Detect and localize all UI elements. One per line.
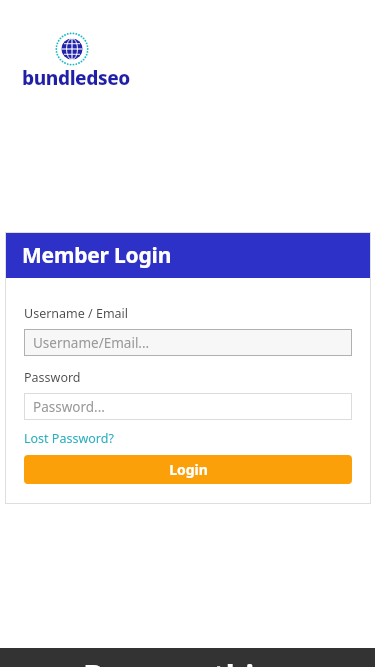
button[interactable]: Lost Password? — [24, 430, 114, 447]
staticText: Lost Password? — [24, 430, 114, 447]
button[interactable]: bundledseo home — [18, 30, 133, 90]
button[interactable]: Username/Email... — [24, 329, 352, 356]
button[interactable]: Login — [24, 455, 352, 484]
button[interactable]: Password... — [24, 393, 352, 420]
staticText: bundledseo — [22, 65, 130, 91]
staticText: Login — [169, 460, 208, 479]
staticText: Username/Email... — [33, 334, 150, 352]
staticText: Password — [24, 369, 81, 386]
staticText: Do something — [83, 655, 293, 667]
staticText: Password... — [33, 398, 105, 416]
staticText: Username / Email — [24, 305, 129, 322]
staticText: Member Login — [22, 241, 172, 270]
